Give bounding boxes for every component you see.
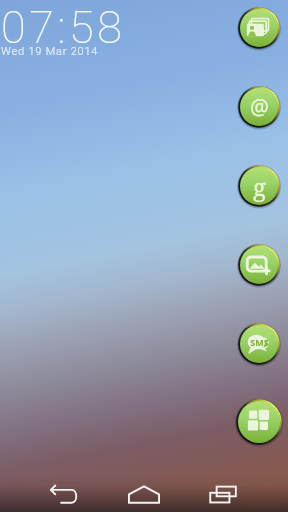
staticText: Wed 19 Mar 2014 bbox=[1, 45, 99, 58]
staticText: SMS bbox=[250, 336, 269, 348]
button[interactable]: All apps bbox=[235, 398, 283, 446]
button[interactable]: Back bbox=[24, 470, 104, 512]
staticText: g bbox=[253, 170, 266, 203]
button[interactable]: Messaging bbox=[237, 322, 281, 366]
staticText: @ bbox=[250, 93, 269, 122]
staticText: 07:58 bbox=[1, 1, 126, 54]
button[interactable]: Add photo bbox=[237, 243, 281, 287]
button[interactable]: Home bbox=[104, 470, 184, 512]
button[interactable]: Gallery bbox=[237, 6, 281, 50]
button[interactable]: Google bbox=[237, 164, 281, 208]
button[interactable]: Recent apps bbox=[184, 470, 264, 512]
button[interactable]: Email bbox=[237, 85, 281, 129]
